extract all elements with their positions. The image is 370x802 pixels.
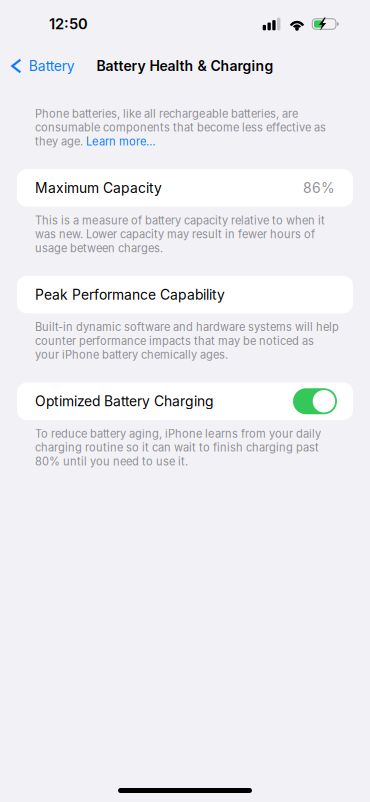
button[interactable]: Optimized Battery Charging [293, 388, 337, 414]
staticText: Built-in dynamic software and hardware s… [35, 320, 339, 334]
staticText: was new. Lower capacity may result in fe… [35, 228, 315, 241]
button[interactable]: Optimized Battery Charging [17, 382, 353, 420]
staticText: 80% until you need to use it. [35, 455, 188, 468]
staticText: 86% [303, 179, 335, 196]
button[interactable]: Maximum Capacity [17, 169, 353, 207]
button[interactable]: Peak Performance Capability [17, 276, 353, 313]
staticText: Battery [29, 58, 75, 74]
staticText: counter performance impacts that may be … [35, 334, 314, 348]
button[interactable]: Learn more… [86, 135, 156, 148]
staticText: Optimized Battery Charging [35, 393, 214, 410]
staticText: they age. [35, 135, 86, 148]
staticText: Peak Performance Capability [35, 286, 225, 303]
staticText: Learn more… [86, 135, 156, 148]
staticText: charging routine so it can wait to finis… [35, 441, 319, 454]
button[interactable]: Battery [0, 54, 75, 78]
staticText: usage between charges. [35, 241, 163, 255]
staticText: your iPhone battery chemically ages. [35, 348, 228, 361]
staticText: Battery Health & Charging [96, 57, 273, 74]
staticText: Maximum Capacity [35, 179, 162, 196]
staticText: consumable components that become less e… [35, 121, 326, 134]
staticText: 12:50 [49, 15, 88, 33]
staticText: To reduce battery aging, iPhone learns f… [35, 427, 321, 440]
staticText: This is a measure of battery capacity re… [35, 214, 325, 227]
staticText: Phone batteries, like all rechargeable b… [35, 107, 298, 120]
